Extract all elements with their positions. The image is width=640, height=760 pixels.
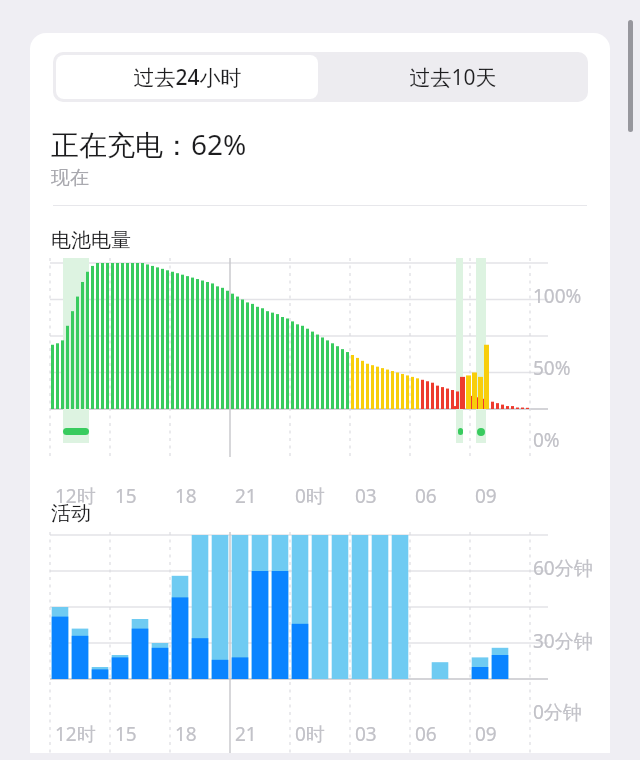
button[interactable]: 过去10天 (321, 55, 585, 99)
staticText: 03 (355, 483, 377, 509)
staticText: 03 (355, 721, 377, 747)
staticText: 0时 (295, 721, 325, 747)
staticText: 09 (475, 721, 497, 747)
staticText: 21 (235, 483, 257, 509)
staticText: 0分钟 (533, 699, 582, 725)
staticText: 15 (115, 483, 137, 509)
staticText: 0时 (295, 483, 325, 509)
staticText: 过去24小时 (133, 63, 242, 92)
staticText: 18 (175, 483, 197, 509)
staticText: 18 (175, 721, 197, 747)
staticText: 100% (533, 283, 582, 309)
button[interactable]: 过去24小时 (56, 55, 318, 99)
staticText: 过去10天 (409, 63, 497, 92)
staticText: 现在 (51, 166, 89, 190)
staticText: 15 (115, 721, 137, 747)
staticText: 活动 (51, 501, 91, 526)
staticText: 06 (415, 483, 437, 509)
staticText: 60分钟 (533, 555, 593, 581)
staticText: 正在充电：62% (51, 125, 247, 163)
staticText: 21 (235, 721, 257, 747)
staticText: 电池电量 (51, 228, 131, 253)
staticText: 30分钟 (533, 628, 593, 654)
staticText: 12时 (55, 483, 96, 509)
staticText: 50% (533, 355, 571, 381)
staticText: 09 (475, 483, 497, 509)
staticText: 0% (533, 427, 560, 453)
staticText: 12时 (55, 721, 96, 747)
staticText: 06 (415, 721, 437, 747)
